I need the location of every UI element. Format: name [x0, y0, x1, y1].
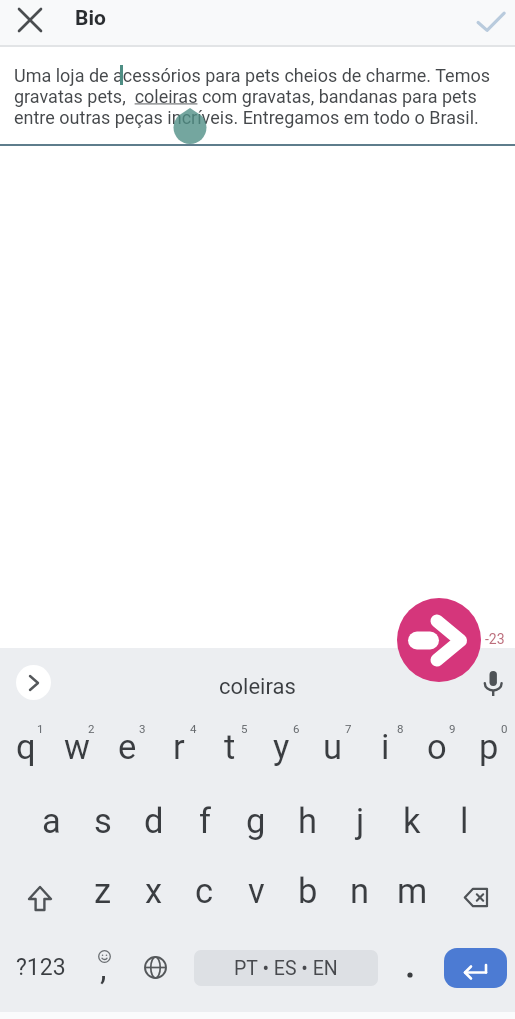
button[interactable] — [387, 935, 433, 999]
staticText: 5 — [241, 722, 248, 735]
button[interactable]: q — [0, 710, 51, 780]
staticText: y — [273, 727, 290, 767]
button[interactable]: c — [179, 860, 230, 922]
staticText: 7 — [345, 722, 352, 735]
staticText: PT • ES • EN — [234, 957, 338, 980]
staticText: r — [173, 727, 185, 767]
staticText: u — [323, 727, 343, 767]
staticText: q — [16, 727, 36, 767]
button[interactable] — [129, 935, 181, 999]
button[interactable]: s — [77, 790, 128, 852]
button[interactable]: f — [179, 790, 230, 852]
staticText: 8 — [397, 722, 404, 735]
button[interactable] — [0, 860, 77, 922]
staticText: w — [64, 727, 90, 767]
button[interactable]: p — [463, 710, 515, 780]
staticText: h — [298, 801, 318, 841]
staticText: f — [199, 801, 211, 841]
staticText: ?123 — [16, 954, 66, 981]
staticText: l — [460, 801, 469, 841]
staticText: entre outras peças incríveis. Entregamos… — [14, 107, 479, 128]
button[interactable]: m — [386, 860, 438, 922]
staticText: 3 — [139, 722, 146, 735]
staticText: z — [94, 871, 112, 911]
staticText: b — [298, 871, 318, 911]
staticText: , — [100, 949, 107, 988]
button[interactable]: a — [26, 790, 77, 852]
staticText: v — [248, 871, 265, 911]
button[interactable] — [467, 0, 515, 45]
button[interactable] — [8, 0, 52, 43]
button[interactable]: l — [438, 790, 490, 852]
button[interactable]: i — [359, 710, 411, 780]
staticText: e — [118, 727, 137, 767]
button[interactable]: ?123 — [10, 935, 72, 999]
button[interactable] — [476, 662, 512, 706]
staticText: 4 — [190, 722, 197, 735]
staticText: 1 — [37, 722, 44, 735]
button[interactable]: y — [255, 710, 307, 780]
button[interactable]: t — [204, 710, 255, 780]
staticText: n — [350, 871, 370, 911]
button[interactable]: x — [128, 860, 179, 922]
staticText: d — [144, 801, 164, 841]
staticText: -23 — [485, 631, 505, 647]
button[interactable]: u — [307, 710, 359, 780]
staticText: Uma loja de acessórios para pets cheios … — [14, 65, 490, 86]
staticText: t — [224, 727, 236, 767]
button[interactable]: coleiras — [219, 674, 296, 700]
staticText: c — [195, 871, 214, 911]
button[interactable]: g — [230, 790, 282, 852]
button[interactable]: r — [153, 710, 204, 780]
button[interactable] — [438, 860, 515, 922]
staticText: gravatas pets, coleiras com gravatas, ba… — [14, 86, 477, 107]
button[interactable]: , — [77, 935, 129, 999]
staticText: s — [94, 801, 112, 841]
button[interactable]: j — [334, 790, 386, 852]
button[interactable]: z — [77, 860, 128, 922]
button[interactable]: k — [386, 790, 438, 852]
button[interactable]: d — [128, 790, 179, 852]
staticText: x — [145, 871, 163, 911]
staticText: 9 — [449, 722, 456, 735]
staticText: j — [356, 801, 365, 841]
staticText: k — [403, 801, 421, 841]
button[interactable]: v — [230, 860, 282, 922]
staticText: o — [427, 727, 447, 767]
button[interactable] — [397, 598, 481, 682]
button[interactable]: w — [51, 710, 102, 780]
staticText: a — [42, 801, 61, 841]
staticText: 6 — [293, 722, 300, 735]
button[interactable]: PT • ES • EN — [194, 950, 378, 986]
button[interactable] — [16, 665, 51, 700]
button[interactable]: e — [102, 710, 153, 780]
button[interactable]: o — [411, 710, 463, 780]
staticText: Bio — [75, 6, 106, 31]
staticText: m — [397, 871, 428, 911]
staticText: i — [381, 727, 390, 767]
button[interactable]: b — [282, 860, 334, 922]
staticText: 0 — [501, 722, 508, 735]
staticText: g — [246, 801, 266, 841]
button[interactable] — [444, 948, 507, 988]
staticText: p — [479, 727, 499, 767]
staticText: 2 — [88, 722, 95, 735]
button[interactable]: n — [334, 860, 386, 922]
staticText: coleiras — [219, 674, 296, 700]
button[interactable]: h — [282, 790, 334, 852]
